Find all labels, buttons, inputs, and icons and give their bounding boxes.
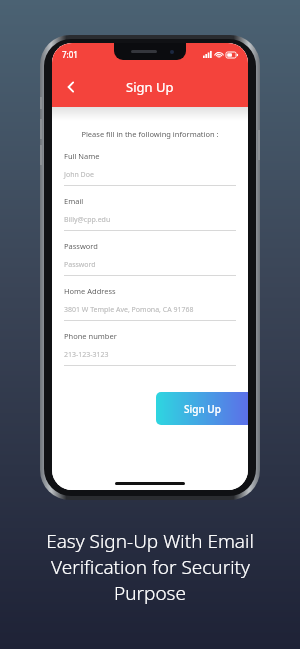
staticText: Password: [64, 260, 96, 270]
staticText: Please fill in the following information…: [52, 129, 248, 139]
staticText: 213-123-3123: [64, 350, 109, 360]
staticText: Password: [64, 241, 98, 251]
staticText: Phone number: [64, 331, 117, 341]
staticText: Sign Up: [126, 78, 174, 96]
staticText: John Doe: [64, 170, 94, 180]
staticText: Easy Sign-Up With Email: [46, 528, 254, 554]
staticText: 7:01: [62, 49, 78, 60]
staticText: 3801 W Temple Ave, Pomona, CA 91768: [64, 305, 194, 315]
button[interactable]: Back: [56, 72, 86, 102]
staticText: Billy@cpp.edu: [64, 215, 111, 225]
staticText: Home Address: [64, 286, 116, 296]
staticText: Purpose: [114, 580, 186, 606]
staticText: Verification for Security: [51, 554, 250, 580]
staticText: Email: [64, 196, 84, 206]
button[interactable]: Sign Up: [156, 392, 248, 425]
staticText: Sign Up: [184, 402, 221, 416]
staticText: Full Name: [64, 151, 100, 161]
